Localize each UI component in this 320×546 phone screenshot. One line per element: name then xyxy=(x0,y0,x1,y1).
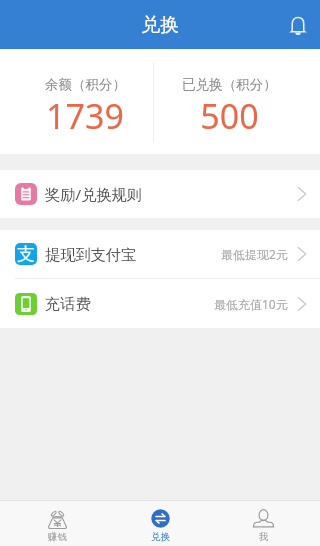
button[interactable]: 支 xyxy=(0,230,320,278)
staticText: 支 xyxy=(17,243,35,265)
button[interactable]: 我 xyxy=(212,501,315,546)
button[interactable]: 奖励/兑换规则 xyxy=(0,170,320,218)
staticText: 兑换 xyxy=(151,531,170,543)
staticText: 我 xyxy=(259,531,269,543)
staticText: 1739 xyxy=(46,93,124,139)
staticText: 余额（积分） xyxy=(45,76,126,93)
button[interactable]: 兑换 xyxy=(109,501,212,546)
button[interactable]: 余额（积分） xyxy=(0,49,170,154)
button[interactable]: 充话费 xyxy=(0,279,320,328)
staticText: 充话费 xyxy=(45,294,91,313)
staticText: 最低提现2元 xyxy=(221,246,288,262)
staticText: 奖励/兑换规则 xyxy=(45,184,142,205)
staticText: 最低充值10元 xyxy=(214,296,288,312)
staticText: 提现到支付宝 xyxy=(45,245,137,264)
button[interactable]: 已兑换（积分） xyxy=(170,49,288,154)
staticText: 赚钱 xyxy=(48,531,67,543)
staticText: 500 xyxy=(200,93,259,139)
staticText: 兑换 xyxy=(141,13,179,37)
button[interactable]: Notifications xyxy=(272,1,320,49)
staticText: 已兑换（积分） xyxy=(182,76,277,93)
button[interactable]: 赚钱 xyxy=(5,501,109,546)
